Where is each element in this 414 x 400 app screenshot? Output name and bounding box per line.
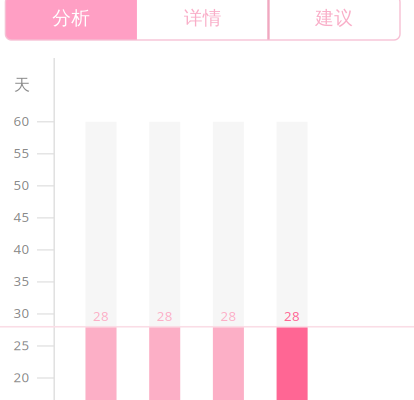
staticText: 28	[157, 307, 173, 325]
button[interactable]: 建议	[268, 0, 400, 40]
button[interactable]: 周期 28 天	[149, 122, 180, 400]
staticText: 天	[14, 75, 30, 95]
staticText: 28	[93, 307, 109, 325]
staticText: 详情	[184, 6, 222, 29]
button[interactable]: 周期 28 天	[85, 122, 116, 400]
staticText: 35	[13, 272, 29, 290]
staticText: 40	[13, 240, 29, 258]
staticText: 28	[220, 307, 236, 325]
button[interactable]: 周期 28 天	[213, 122, 244, 400]
staticText: 20	[13, 368, 29, 386]
staticText: 分析	[52, 6, 90, 29]
staticText: 28	[284, 307, 300, 325]
staticText: 60	[13, 112, 29, 130]
button[interactable]: 周期 28 天	[277, 122, 308, 400]
staticText: 45	[13, 208, 29, 226]
staticText: 30	[13, 304, 29, 322]
staticText: 50	[13, 176, 29, 194]
staticText: 建议	[315, 6, 353, 29]
staticText: 25	[13, 336, 29, 354]
button[interactable]: 详情	[137, 0, 268, 40]
staticText: 55	[13, 144, 29, 162]
button[interactable]: 分析	[5, 0, 137, 40]
